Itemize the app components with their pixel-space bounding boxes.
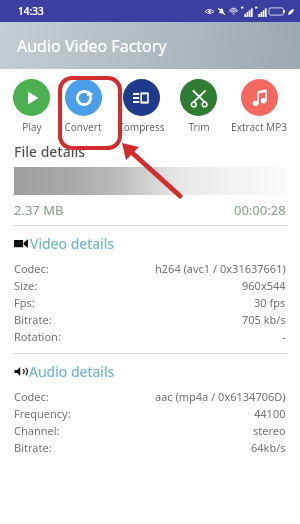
staticText: Trim [188,120,210,134]
staticText: Frequency: [14,406,71,421]
staticText: 14:33 [18,4,44,18]
staticText: Rotation: [14,329,61,344]
button[interactable]: Trim [178,79,219,134]
staticText: Codec: [14,261,49,276]
button[interactable]: Extract MP3 [229,79,289,134]
staticText: - [282,329,286,344]
staticText: Size: [14,278,38,293]
staticText: Extract MP3 [231,120,287,134]
staticText: stereo [253,423,286,438]
staticText: 960x544 [242,278,286,293]
button[interactable]: Play [11,79,52,134]
staticText: 2.37 MB [14,201,64,219]
staticText: 64kb/s [251,440,286,455]
staticText: Codec: [14,389,49,404]
staticText: 705 kb/s [242,312,286,327]
staticText: Channel: [14,423,60,438]
button[interactable]: Convert [62,79,104,134]
staticText: File details [14,142,86,161]
button[interactable]: Compress [115,79,167,134]
staticText: Audio Video Factory [17,35,167,57]
staticText: Video details [30,234,114,253]
staticText: 44100 [254,406,286,421]
staticText: h264 (avc1 / 0x31637661) [155,261,286,276]
staticText: Audio details [29,362,115,381]
staticText: Compress [117,120,165,134]
staticText: Play [22,120,42,134]
staticText: Convert [64,120,102,134]
staticText: Bitrate: [14,440,52,455]
staticText: 00:00:28 [234,201,286,219]
staticText: aac (mp4a / 0x6134706D) [155,389,286,404]
staticText: 30 fps [254,295,286,310]
staticText: Bitrate: [14,312,52,327]
staticText: Fps: [14,295,35,310]
